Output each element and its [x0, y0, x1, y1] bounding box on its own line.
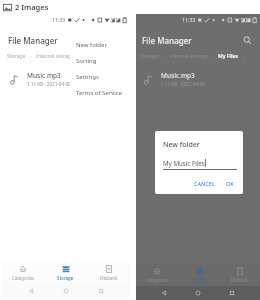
- button[interactable]: Settings: [70, 69, 132, 85]
- button[interactable]: Storage: [141, 53, 160, 60]
- staticText: Music.mp3: [27, 71, 61, 80]
- button[interactable]: Search: [241, 34, 254, 47]
- staticText: My Music Files: [163, 159, 205, 167]
- staticText: New folder: [76, 41, 107, 49]
- staticText: Sorting: [76, 57, 97, 65]
- staticText: Categories: [146, 277, 169, 283]
- button[interactable]: New folder: [70, 37, 132, 53]
- staticText: 11:33: [52, 16, 66, 23]
- staticText: Terms of Service: [76, 89, 123, 97]
- staticText: Music.mp3: [161, 71, 195, 80]
- button[interactable]: Sorting: [70, 53, 132, 69]
- button[interactable]: Storage: [7, 53, 26, 60]
- button[interactable]: Home: [60, 285, 72, 297]
- button[interactable]: Internal storage: [36, 53, 74, 60]
- staticText: New folder: [163, 140, 200, 150]
- staticText: 1.11 KB · 2021-04-09: [27, 81, 71, 87]
- button[interactable]: Music.mp3: [136, 66, 260, 92]
- button[interactable]: OK: [223, 178, 237, 189]
- button[interactable]: Storage: [44, 262, 87, 284]
- staticText: Categories: [12, 275, 35, 281]
- button[interactable]: Back: [25, 285, 37, 297]
- button[interactable]: My Files: [218, 53, 239, 60]
- button[interactable]: Filebank: [87, 262, 130, 284]
- button[interactable]: Back: [158, 287, 170, 299]
- staticText: Filebank: [231, 277, 249, 283]
- staticText: 50%: [111, 16, 122, 23]
- button[interactable]: Storage: [178, 264, 219, 286]
- button[interactable]: Internal storage: [170, 53, 208, 60]
- button[interactable]: Recents: [226, 287, 238, 299]
- staticText: Settings: [76, 73, 99, 81]
- button[interactable]: Music.mp3: [2, 66, 130, 92]
- staticText: 50%: [241, 16, 252, 23]
- button[interactable]: Home: [192, 287, 204, 299]
- button[interactable]: Recents: [95, 285, 107, 297]
- staticText: CANCEL: [194, 180, 215, 187]
- staticText: 1.11 KB · 2021-04-09: [161, 81, 205, 87]
- staticText: 2 Images: [15, 2, 49, 12]
- staticText: Filebank: [100, 275, 118, 281]
- button[interactable]: Filebank: [219, 264, 260, 286]
- button[interactable]: Categories: [2, 262, 44, 284]
- button[interactable]: Terms of Service: [70, 85, 132, 101]
- staticText: File Manager: [8, 35, 58, 46]
- staticText: 11:33: [182, 16, 196, 23]
- staticText: Storage: [57, 275, 74, 281]
- staticText: Storage: [190, 277, 207, 283]
- staticText: OK: [226, 180, 234, 187]
- staticText: File Manager: [142, 35, 192, 46]
- button[interactable]: Categories: [136, 264, 178, 286]
- button[interactable]: CANCEL: [191, 178, 218, 189]
